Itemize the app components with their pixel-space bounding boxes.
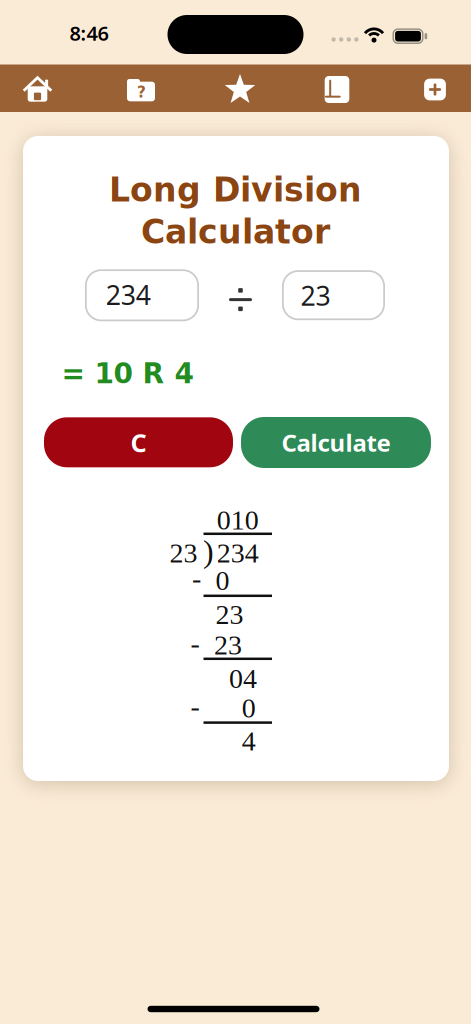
- button[interactable]: Reference: [320, 72, 354, 106]
- staticText: 4: [242, 725, 256, 756]
- button[interactable]: Add: [418, 72, 452, 106]
- button[interactable]: Home: [20, 72, 54, 106]
- button[interactable]: C: [44, 417, 233, 467]
- staticText: 0: [242, 692, 256, 723]
- button[interactable]: Dividend: [85, 269, 199, 321]
- staticText: -: [192, 562, 201, 593]
- staticText: Calculator: [141, 213, 330, 251]
- staticText: 23: [214, 629, 242, 660]
- staticText: -: [190, 627, 199, 658]
- staticText: 234: [106, 277, 151, 312]
- staticText: 04: [229, 663, 257, 694]
- staticText: C: [130, 425, 146, 459]
- staticText: Long Division: [109, 171, 362, 209]
- staticText: = 10 R 4: [61, 357, 193, 390]
- button[interactable]: Help: [123, 72, 157, 106]
- staticText: 010: [217, 504, 259, 535]
- staticText: 23: [215, 599, 243, 630]
- staticText: ?: [137, 83, 146, 101]
- staticText: Calculate: [281, 427, 390, 458]
- staticText: ): [203, 534, 214, 569]
- staticText: 8:46: [69, 20, 108, 46]
- staticText: -: [190, 690, 199, 721]
- button[interactable]: Calculate: [241, 417, 431, 468]
- button[interactable]: Favorites: [223, 72, 257, 106]
- staticText: 234: [217, 537, 259, 568]
- staticText: 0: [215, 565, 229, 596]
- staticText: 23: [170, 537, 198, 568]
- button[interactable]: Divisor: [282, 270, 385, 320]
- staticText: 23: [300, 278, 330, 313]
